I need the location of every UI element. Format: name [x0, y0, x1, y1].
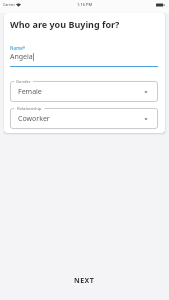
button[interactable]: Relationship — [10, 108, 158, 129]
staticText: Relationship — [17, 106, 42, 112]
staticText: Female — [18, 87, 42, 97]
staticText: Coworker — [18, 114, 50, 124]
other: Open Gender dropdown — [144, 90, 148, 94]
staticText: Angela — [10, 52, 33, 62]
staticText: Gender — [16, 79, 31, 85]
button[interactable]: NEXT — [64, 271, 105, 291]
button[interactable]: Name* — [10, 45, 158, 67]
staticText: NEXT — [74, 276, 95, 286]
staticText: Who are you Buying for? — [10, 18, 120, 30]
other: Open Relationship dropdown — [144, 117, 148, 121]
staticText: Carrier — [3, 2, 15, 7]
button[interactable]: Gender — [10, 81, 158, 102]
staticText: 1:16 PM — [77, 2, 93, 7]
staticText: Name* — [10, 45, 26, 51]
